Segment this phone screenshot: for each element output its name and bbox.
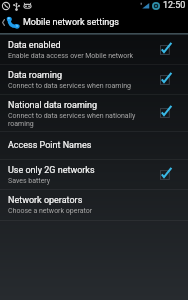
button[interactable]: Network operators <box>0 190 188 221</box>
staticText: Data roaming <box>8 70 62 81</box>
button[interactable]: Data roaming <box>0 65 188 95</box>
staticText: Connect to data services when roaming <box>8 82 131 90</box>
staticText: Saves battery <box>8 177 51 185</box>
button[interactable]: Data enabled <box>0 35 188 65</box>
button[interactable]: Navigate up <box>0 16 21 29</box>
staticText: Choose a network operator <box>8 207 93 215</box>
button[interactable]: National data roaming <box>0 95 188 132</box>
staticText: Data enabled <box>8 40 61 51</box>
button[interactable]: Use only 2G networks <box>0 160 188 190</box>
staticText: 12:50 <box>163 0 186 11</box>
staticText: Network operators <box>8 195 83 206</box>
staticText: Connect to data services when nationally… <box>8 112 154 128</box>
staticText: Mobile network settings <box>23 17 120 28</box>
button[interactable]: Access Point Names <box>0 132 188 160</box>
staticText: Enable data access over Mobile network <box>8 52 134 60</box>
staticText: Access Point Names <box>8 140 92 151</box>
staticText: National data roaming <box>8 100 98 111</box>
staticText: Use only 2G networks <box>8 165 95 176</box>
